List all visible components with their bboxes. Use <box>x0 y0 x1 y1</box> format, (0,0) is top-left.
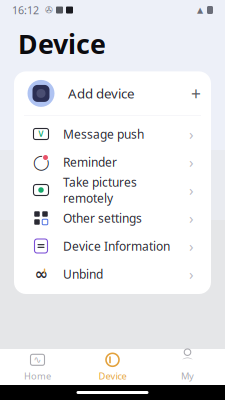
staticText: My <box>181 370 194 382</box>
staticText: › <box>189 152 194 172</box>
button[interactable]: ∨ <box>14 120 211 148</box>
staticText: › <box>189 208 194 228</box>
button[interactable]: Device Information <box>14 232 211 260</box>
button[interactable]: Take pictures remotely <box>14 176 211 204</box>
button[interactable]: ⌒ <box>150 349 225 385</box>
staticText: Add device <box>68 85 135 102</box>
staticText: Other settings <box>63 210 142 226</box>
staticText: Message push <box>63 126 144 142</box>
staticText: Device <box>18 26 106 61</box>
staticText: Reminder <box>63 154 117 170</box>
staticText: ∨ <box>37 127 45 139</box>
staticText: ✇ <box>45 5 53 15</box>
button[interactable]: Other settings <box>14 204 211 232</box>
staticText: + <box>191 82 201 105</box>
staticText: Device <box>98 370 126 382</box>
staticText: Home <box>24 370 51 382</box>
staticText: Unbind <box>63 266 103 282</box>
staticText: ⌒ <box>181 356 193 371</box>
button[interactable]: Device <box>75 349 150 385</box>
button[interactable]: ◯ <box>14 148 211 176</box>
staticText: › <box>189 264 194 284</box>
staticText: › <box>189 124 194 144</box>
staticText: Take pictures remotely <box>63 174 137 206</box>
staticText: Device Information <box>63 238 170 254</box>
staticText: ◯ <box>33 154 49 170</box>
button[interactable]: ∿ <box>0 349 75 385</box>
staticText: › <box>189 236 194 256</box>
staticText: ∿ <box>33 354 41 365</box>
staticText: 16:12 <box>12 3 39 17</box>
button[interactable]: Add device <box>14 71 211 115</box>
staticText: ▲ <box>197 5 203 15</box>
button[interactable]: ∞ <box>14 260 211 288</box>
staticText: ∞ <box>34 265 47 283</box>
staticText: › <box>189 180 194 200</box>
